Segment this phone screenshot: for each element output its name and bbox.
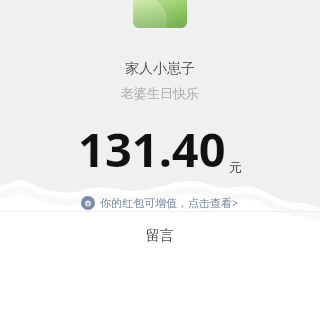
staticText: 老婆生日快乐: [121, 85, 199, 101]
button[interactable]: 留言: [0, 212, 320, 260]
staticText: 131.40: [78, 117, 226, 181]
staticText: 家人小崽子: [125, 60, 195, 78]
staticText: 留言: [146, 227, 174, 245]
button[interactable]: Sender avatar: [133, 0, 187, 28]
staticText: 元: [229, 159, 242, 175]
staticText: 你的红包可增值，点击查看>: [100, 195, 239, 210]
button[interactable]: 你的红包可增值，点击查看>: [77, 193, 243, 212]
